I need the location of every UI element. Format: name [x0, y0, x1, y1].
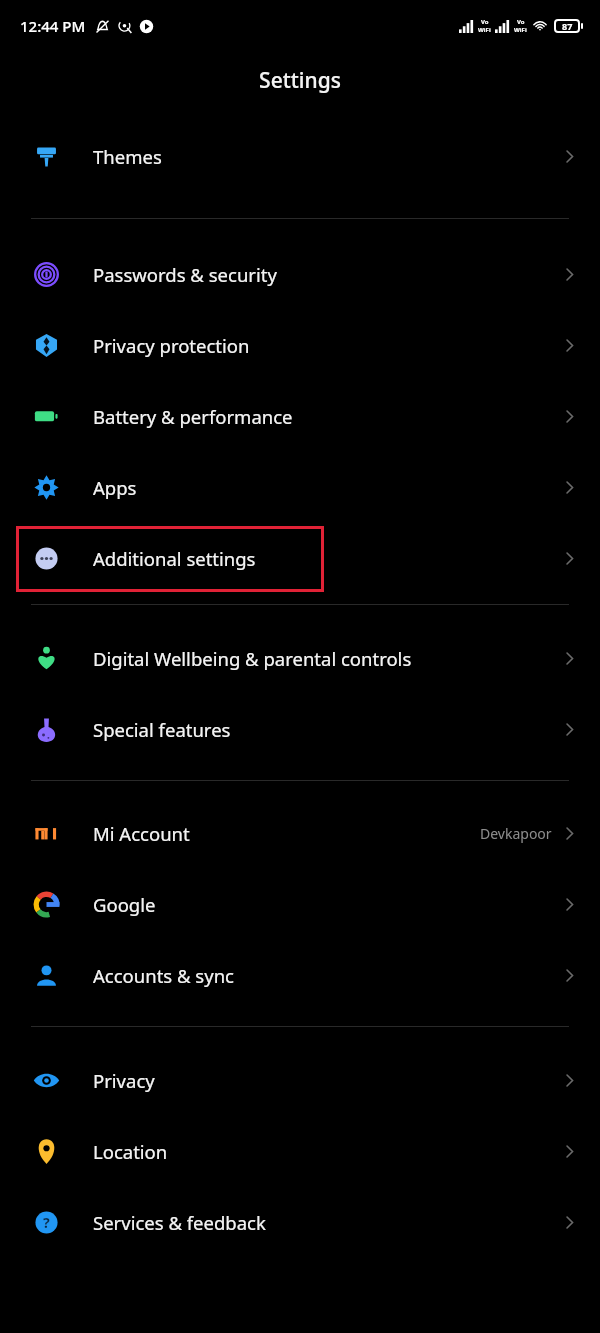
button[interactable]: Apps [0, 452, 600, 523]
staticText: Battery & performance [93, 404, 293, 429]
staticText: Vo [481, 18, 489, 26]
button[interactable]: Themes [0, 121, 600, 192]
staticText: Additional settings [93, 546, 256, 571]
staticText: ? [43, 1213, 50, 1232]
staticText: Vo [517, 18, 525, 26]
button[interactable]: Privacy [0, 1045, 600, 1116]
staticText: Themes [93, 144, 162, 169]
staticText: Services & feedback [93, 1210, 266, 1235]
staticText: 12:44 PM [20, 16, 86, 36]
button[interactable]: Special features [0, 694, 600, 765]
staticText: Accounts & sync [93, 963, 234, 988]
button[interactable]: Battery & performance [0, 381, 600, 452]
button[interactable]: ? [0, 1187, 600, 1258]
staticText: Settings [259, 66, 341, 95]
button[interactable]: Additional settings [0, 523, 600, 594]
staticText: Digital Wellbeing & parental controls [93, 646, 412, 671]
button[interactable]: Privacy protection [0, 310, 600, 381]
button[interactable]: Location [0, 1116, 600, 1187]
staticText: Passwords & security [93, 262, 277, 287]
staticText: Devkapoor [480, 824, 552, 843]
staticText: Mi Account [93, 821, 190, 846]
button[interactable]: Google [0, 869, 600, 940]
staticText: 87 [562, 20, 573, 32]
button[interactable]: Passwords & security [0, 239, 600, 310]
staticText: Special features [93, 717, 231, 742]
staticText: Location [93, 1139, 168, 1164]
button[interactable]: Accounts & sync [0, 940, 600, 1011]
staticText: Google [93, 892, 156, 917]
staticText: WiFi [478, 26, 491, 34]
staticText: WiFi [514, 26, 527, 34]
button[interactable]: Digital Wellbeing & parental controls [0, 623, 600, 694]
staticText: Apps [93, 475, 137, 500]
button[interactable]: Mi Account [0, 798, 600, 869]
staticText: Privacy protection [93, 333, 250, 358]
staticText: Privacy [93, 1068, 155, 1093]
